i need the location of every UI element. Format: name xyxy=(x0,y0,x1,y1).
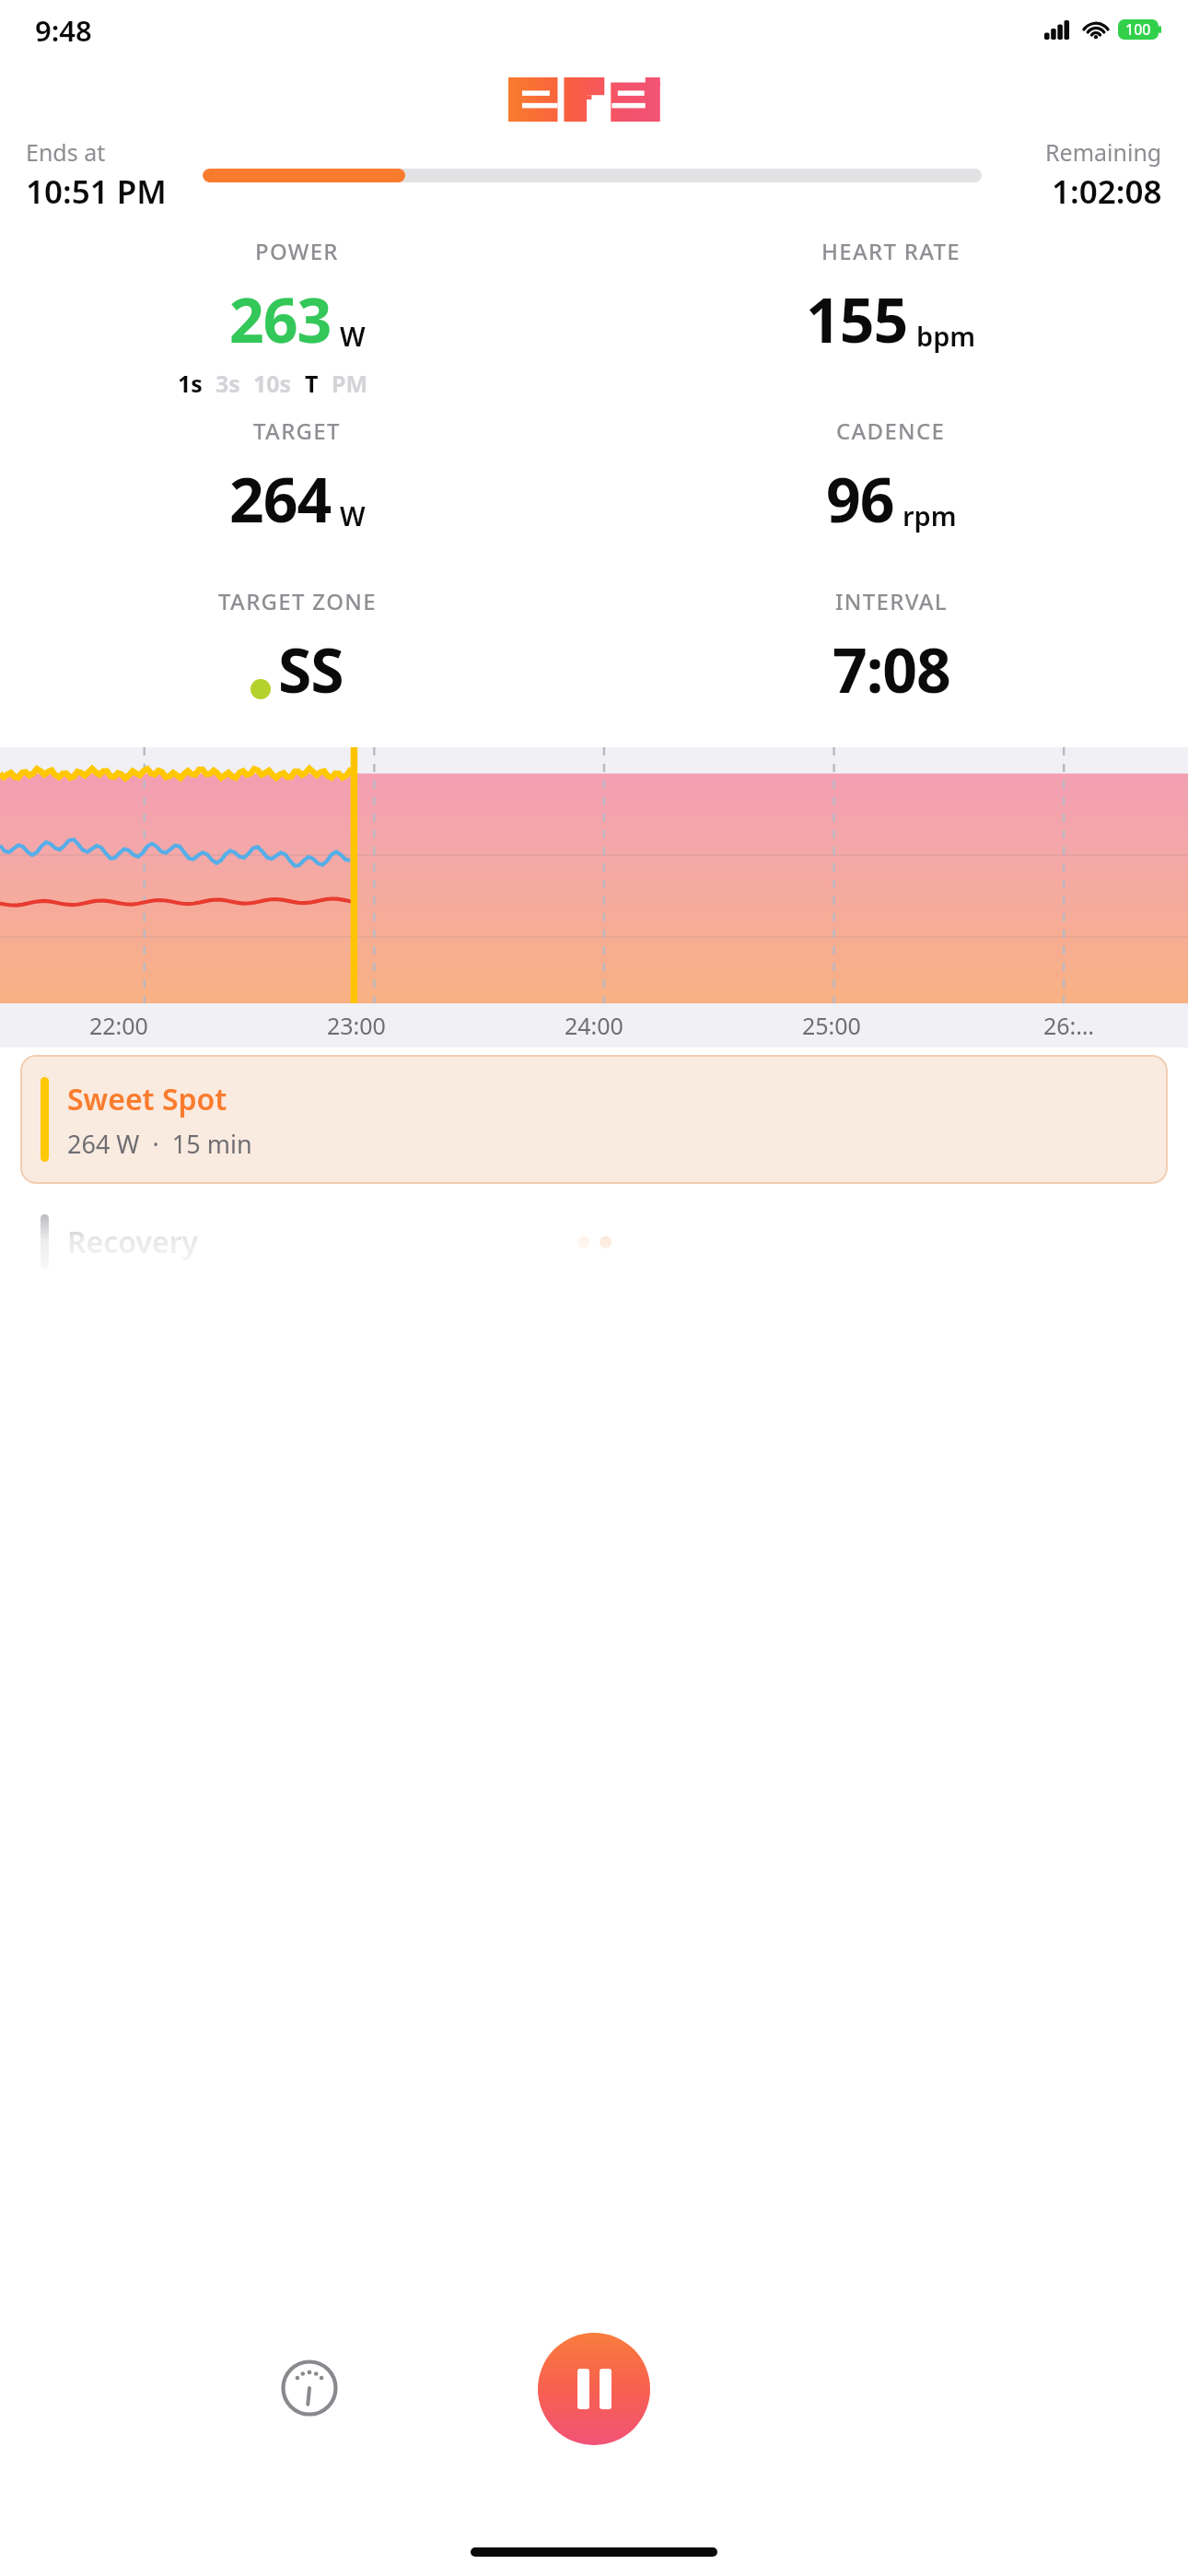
staticText: rpm xyxy=(903,498,957,533)
button[interactable]: CADENCE xyxy=(594,416,1188,540)
staticText: TARGET xyxy=(253,416,341,446)
staticText: Recovery xyxy=(67,1222,199,1262)
staticText: PM xyxy=(332,368,368,399)
staticText: 155 xyxy=(806,277,908,360)
staticText: Sweet Spot xyxy=(67,1079,227,1119)
staticText: 10:51 PM xyxy=(26,170,167,214)
staticText: 264 xyxy=(229,457,332,540)
staticText: Remaining xyxy=(1045,136,1162,168)
staticText: W xyxy=(340,498,366,533)
staticText: 26:… xyxy=(1043,1010,1095,1041)
button[interactable]: HEART RATE xyxy=(594,236,1188,360)
staticText: HEART RATE xyxy=(821,236,961,266)
button[interactable]: PM xyxy=(325,364,375,403)
staticText: W xyxy=(340,318,366,354)
staticText: T xyxy=(305,368,319,399)
staticText: TARGET ZONE xyxy=(218,586,377,616)
staticText: 100 xyxy=(1125,19,1151,40)
button[interactable]: Pause xyxy=(538,2333,650,2445)
staticText: bpm xyxy=(916,318,976,354)
button[interactable]: 10s xyxy=(247,364,298,403)
staticText: Ends at xyxy=(26,136,106,168)
button[interactable]: POWER xyxy=(0,236,594,360)
button[interactable]: Recovery xyxy=(20,1200,1168,1283)
button[interactable]: Sweet Spot xyxy=(20,1055,1168,1184)
button[interactable]: T xyxy=(298,364,325,403)
staticText: 7:08 xyxy=(833,627,950,710)
button[interactable]: INTERVAL xyxy=(594,586,1188,710)
button[interactable]: 1s xyxy=(171,364,209,403)
staticText: 24:00 xyxy=(565,1010,623,1041)
staticText: 10s xyxy=(253,368,292,399)
staticText: CADENCE xyxy=(836,416,946,446)
staticText: POWER xyxy=(255,236,339,266)
staticText: 96 xyxy=(826,457,894,540)
button[interactable]: TARGET ZONE xyxy=(0,586,594,710)
staticText: 1:02:08 xyxy=(1052,170,1162,214)
button[interactable]: 3s xyxy=(209,364,247,403)
staticText: 263 xyxy=(229,277,332,360)
button[interactable]: Gauge xyxy=(276,2355,343,2421)
staticText: 9:48 xyxy=(35,11,92,50)
staticText: SS xyxy=(278,627,344,710)
staticText: 22:00 xyxy=(89,1010,148,1041)
staticText: INTERVAL xyxy=(835,586,948,616)
staticText: 25:00 xyxy=(802,1010,861,1041)
staticText: 264 W · 15 min xyxy=(67,1127,252,1161)
staticText: 23:00 xyxy=(327,1010,386,1041)
staticText: 3s xyxy=(215,368,240,399)
staticText: 1s xyxy=(178,368,203,399)
button[interactable]: TARGET xyxy=(0,416,594,540)
button[interactable] xyxy=(0,747,1188,1003)
